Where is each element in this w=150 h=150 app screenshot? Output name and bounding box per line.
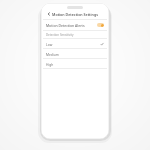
staticText: Detection Sensitivity <box>46 33 104 37</box>
button[interactable]: Back <box>45 10 53 18</box>
button[interactable]: Motion Detection Alerts <box>43 20 107 30</box>
staticText: High <box>46 62 104 66</box>
staticText: Low <box>46 42 100 46</box>
staticText: Motion Detection Settings <box>52 12 98 17</box>
button[interactable]: Low <box>43 39 107 48</box>
button[interactable]: High <box>43 59 107 68</box>
button[interactable]: Medium <box>43 49 107 58</box>
staticText: Motion Detection Alerts <box>46 23 97 28</box>
staticText: Medium <box>46 52 104 56</box>
